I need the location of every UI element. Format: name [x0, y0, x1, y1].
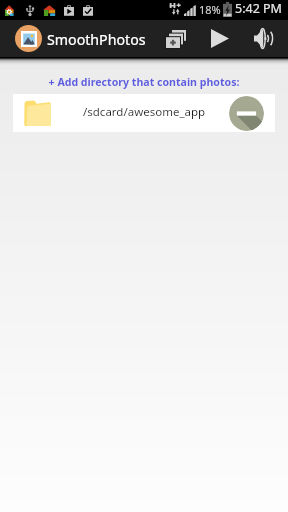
button[interactable]: Add album — [160, 20, 192, 57]
staticText: SmoothPhotos — [47, 30, 146, 49]
button[interactable]: Remove directory — [229, 96, 264, 131]
staticText: + Add directory that contain photos: — [0, 75, 288, 89]
staticText: /sdcard/awesome_app — [83, 104, 206, 120]
button[interactable]: Volume — [248, 20, 280, 57]
staticText: 18% — [199, 2, 221, 17]
staticText: 5:42 PM — [235, 0, 282, 17]
button[interactable]: Play slideshow — [204, 20, 236, 57]
button[interactable]: /sdcard/awesome_app — [13, 94, 275, 132]
